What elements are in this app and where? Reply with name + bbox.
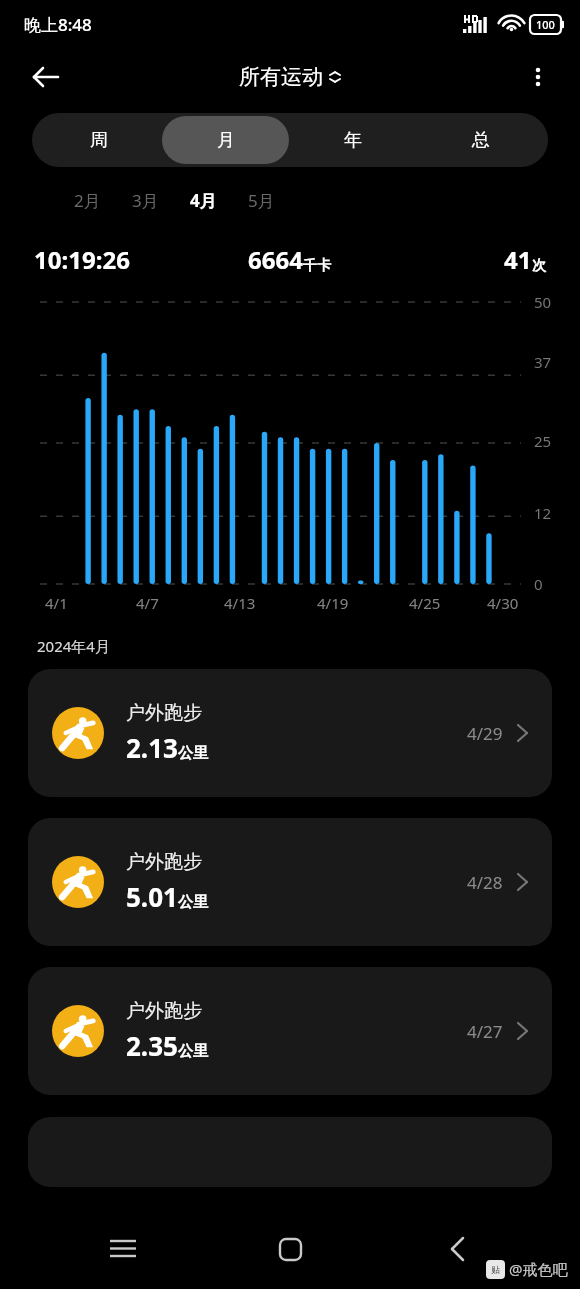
staticText: 2月 xyxy=(74,189,101,212)
staticText: 晚上8:48 xyxy=(24,13,92,36)
staticText: 2.13 xyxy=(126,730,178,765)
staticText: 4/7 xyxy=(136,593,159,613)
staticText: 0 xyxy=(534,574,543,594)
staticText: @戒色吧 xyxy=(509,1259,568,1279)
button[interactable]: 5月 xyxy=(232,185,290,215)
staticText: 年 xyxy=(344,129,362,152)
button[interactable]: 月 xyxy=(162,116,289,164)
button[interactable]: 所有运动 xyxy=(239,64,342,90)
staticText: 4/25 xyxy=(409,593,441,613)
button[interactable]: Back xyxy=(22,53,70,101)
staticText: 5.01 xyxy=(126,879,178,914)
button[interactable]: 年 xyxy=(289,116,417,164)
staticText: 3月 xyxy=(132,189,159,212)
staticText: 10:19:26 xyxy=(34,243,130,276)
staticText: 5月 xyxy=(248,189,275,212)
button[interactable]: 4月 xyxy=(174,185,232,215)
button[interactable]: 总 xyxy=(417,116,545,164)
button[interactable]: 2月 xyxy=(58,185,116,215)
staticText: 周 xyxy=(90,129,108,152)
button[interactable]: 3月 xyxy=(116,185,174,215)
staticText: 户外跑步 xyxy=(126,850,202,874)
staticText: 所有运动 xyxy=(239,64,323,90)
button[interactable]: Back xyxy=(427,1219,487,1279)
staticText: 4/29 xyxy=(467,722,503,745)
button[interactable]: 周 xyxy=(35,116,162,164)
staticText: 户外跑步 xyxy=(126,701,202,725)
staticText: 户外跑步 xyxy=(126,999,202,1023)
staticText: 4月 xyxy=(190,189,217,212)
button[interactable]: 户外跑步 xyxy=(28,818,552,946)
button[interactable]: Home xyxy=(260,1219,320,1279)
staticText: 总 xyxy=(472,129,490,152)
staticText: 贴 xyxy=(491,1264,500,1275)
staticText: 次 xyxy=(532,257,546,275)
staticText: 公里 xyxy=(178,893,208,912)
staticText: 4/1 xyxy=(45,593,68,613)
staticText: 月 xyxy=(217,129,235,152)
staticText: 41 xyxy=(504,243,532,276)
button[interactable]: 户外跑步 xyxy=(28,669,552,797)
staticText: 2.35 xyxy=(126,1028,178,1063)
staticText: 4/13 xyxy=(224,593,256,613)
staticText: 25 xyxy=(534,431,552,451)
button[interactable]: Recent apps xyxy=(93,1219,153,1279)
staticText: 37 xyxy=(534,352,552,372)
staticText: 50 xyxy=(534,292,552,312)
staticText: 2024年4月 xyxy=(37,636,110,656)
staticText: 4/27 xyxy=(467,1020,503,1043)
staticText: 4/28 xyxy=(467,871,503,894)
staticText: 千卡 xyxy=(303,257,331,275)
staticText: 12 xyxy=(534,503,552,523)
staticText: 6664 xyxy=(248,243,303,276)
staticText: 4/19 xyxy=(317,593,349,613)
staticText: 公里 xyxy=(178,744,208,763)
staticText: 公里 xyxy=(178,1042,208,1061)
button[interactable]: 户外跑步 xyxy=(28,967,552,1095)
staticText: 4/30 xyxy=(487,593,519,613)
staticText: 100 xyxy=(536,17,555,32)
button[interactable]: More options xyxy=(516,55,560,99)
